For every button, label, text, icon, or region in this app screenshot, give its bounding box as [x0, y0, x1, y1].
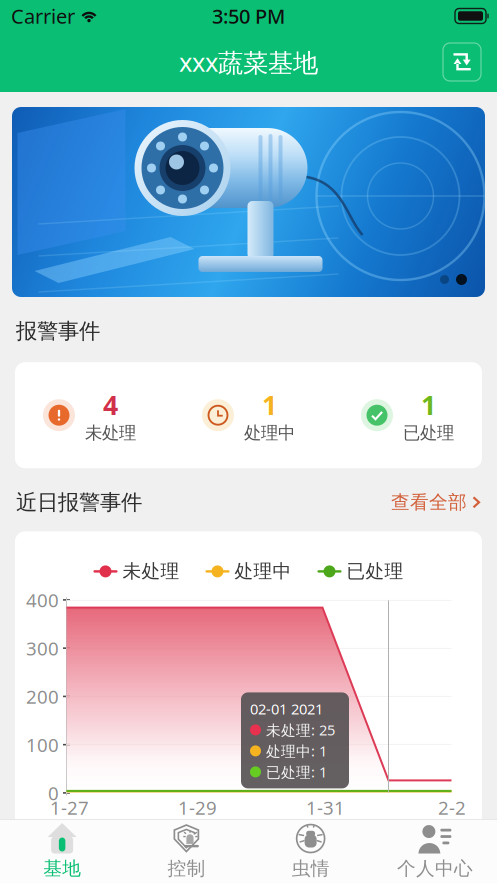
staticText: 基地 — [43, 857, 81, 880]
staticText: 1 — [262, 387, 277, 422]
button[interactable]: 个人中心 — [373, 820, 497, 882]
staticText: 虫情 — [292, 857, 330, 880]
staticText: 已处理 — [403, 422, 454, 444]
staticText: 处理中: 1 — [266, 741, 327, 761]
staticText: 处理中 — [244, 422, 295, 444]
staticText: 报警事件 — [16, 318, 100, 344]
staticText: 200 — [26, 684, 59, 709]
staticText: 3:50 PM — [212, 3, 285, 29]
staticText: xxx蔬菜基地 — [179, 45, 318, 79]
staticText: 处理中 — [234, 560, 291, 583]
staticText: 2-2 — [438, 795, 466, 820]
staticText: 1 — [421, 387, 436, 422]
staticText: 未处理: 25 — [266, 720, 335, 740]
staticText: 4 — [103, 387, 118, 422]
staticText: 1-27 — [50, 795, 89, 820]
staticText: 个人中心 — [397, 857, 473, 880]
staticText: 查看全部 — [391, 491, 467, 514]
staticText: 近日报警事件 — [16, 489, 142, 515]
staticText: 0 — [48, 780, 59, 805]
staticText: 02-01 2021 — [250, 699, 323, 719]
staticText: 已处理: 1 — [266, 762, 327, 782]
button[interactable]: 基地 — [0, 820, 124, 882]
staticText: 100 — [26, 732, 59, 757]
staticText: 400 — [26, 587, 59, 612]
staticText: 未处理 — [122, 560, 179, 583]
staticText: 1-29 — [178, 795, 217, 820]
staticText: 控制 — [167, 857, 205, 880]
staticText: 未处理 — [85, 422, 136, 444]
staticText: 1-31 — [306, 795, 345, 820]
staticText: Carrier — [11, 3, 75, 29]
staticText: 已处理 — [346, 560, 403, 583]
button[interactable]: 控制 — [124, 820, 248, 882]
button[interactable]: 虫情 — [248, 820, 373, 882]
button[interactable]: 切换基地 — [443, 43, 481, 81]
button[interactable]: 查看全部 — [391, 491, 481, 514]
staticText: 300 — [26, 636, 59, 661]
